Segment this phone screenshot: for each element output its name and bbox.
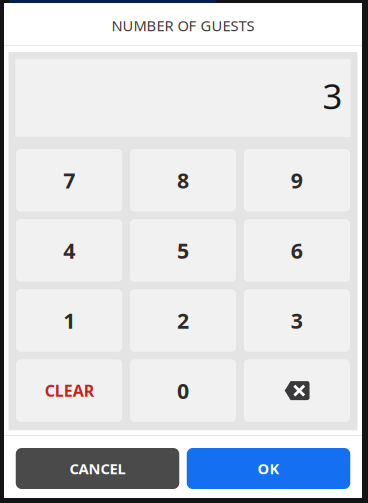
staticText: 2 (177, 306, 189, 335)
staticText: 5 (177, 236, 189, 264)
button[interactable]: 6 (243, 219, 350, 282)
staticText: 0 (177, 376, 189, 405)
button[interactable]: OK (187, 448, 350, 489)
button[interactable]: 5 (129, 219, 237, 282)
button[interactable]: Delete (243, 359, 350, 422)
button[interactable]: 4 (15, 219, 123, 282)
staticText: CANCEL (69, 459, 125, 478)
staticText: 4 (63, 236, 75, 264)
staticText: 1 (63, 306, 75, 335)
button[interactable]: 9 (243, 148, 350, 212)
button[interactable]: 0 (129, 359, 237, 422)
button[interactable]: CANCEL (16, 448, 179, 489)
staticText: 3 (291, 306, 303, 335)
button[interactable]: 8 (129, 148, 237, 212)
staticText: 6 (291, 236, 303, 264)
staticText: NUMBER OF GUESTS (111, 16, 254, 35)
staticText: OK (257, 459, 279, 478)
button[interactable]: 3 (243, 289, 350, 352)
staticText: 7 (63, 166, 75, 194)
staticText: CLEAR (45, 380, 94, 401)
staticText: 9 (291, 166, 303, 194)
staticText: 3 (322, 73, 342, 119)
button[interactable]: 2 (129, 289, 237, 352)
staticText: 8 (177, 166, 189, 194)
button[interactable]: Clear (15, 359, 123, 422)
button[interactable]: 7 (15, 148, 123, 212)
button[interactable]: 1 (15, 289, 123, 352)
